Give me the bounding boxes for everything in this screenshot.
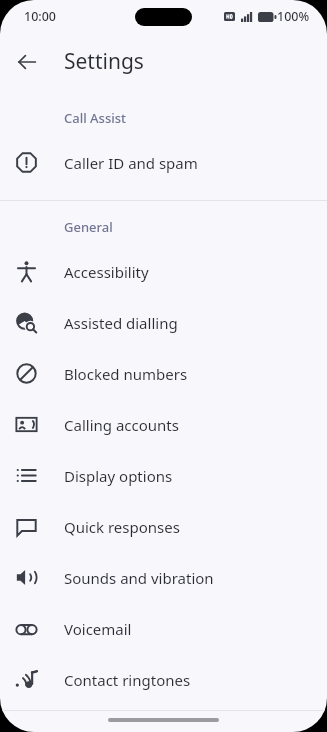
staticText: Contact ringtones xyxy=(64,670,191,690)
button[interactable]: Assisted dialling xyxy=(0,297,327,348)
staticText: Quick responses xyxy=(64,517,180,537)
button[interactable]: Back xyxy=(10,45,44,79)
button[interactable]: Voicemail xyxy=(0,603,327,654)
staticText: Calling accounts xyxy=(64,415,179,435)
staticText: Call Assist xyxy=(64,109,127,127)
button[interactable]: Display options xyxy=(0,450,327,501)
button[interactable]: Caller ID and spam xyxy=(0,137,327,188)
staticText: 100% xyxy=(277,8,310,25)
staticText: Sounds and vibration xyxy=(64,568,214,588)
button[interactable]: Accessibility xyxy=(0,246,327,297)
staticText: General xyxy=(64,218,113,236)
button[interactable]: Calling accounts xyxy=(0,399,327,450)
button[interactable]: Blocked numbers xyxy=(0,348,327,399)
staticText: Blocked numbers xyxy=(64,364,188,384)
button[interactable]: Sounds and vibration xyxy=(0,552,327,603)
staticText: Assisted dialling xyxy=(64,313,178,333)
staticText: Voicemail xyxy=(64,619,132,639)
button[interactable]: Contact ringtones xyxy=(0,654,327,705)
staticText: Display options xyxy=(64,466,173,486)
staticText: Caller ID and spam xyxy=(64,153,198,173)
button[interactable]: Quick responses xyxy=(0,501,327,552)
staticText: 10:00 xyxy=(24,8,57,25)
staticText: Accessibility xyxy=(64,262,149,282)
staticText: Settings xyxy=(64,47,144,76)
